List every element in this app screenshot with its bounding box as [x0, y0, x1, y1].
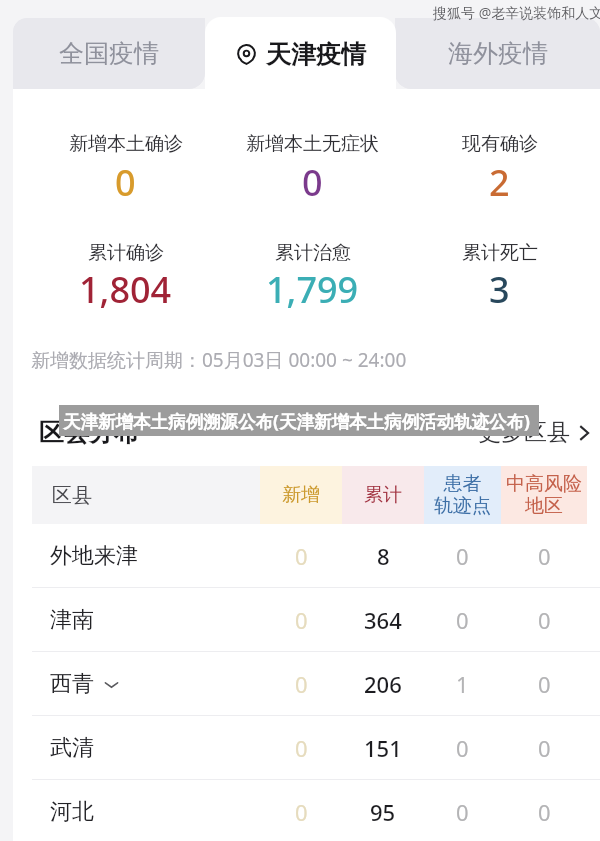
staticText: 0	[302, 158, 323, 207]
staticText: 海外疫情	[448, 38, 548, 69]
staticText: 206	[364, 669, 402, 699]
staticText: 8	[377, 541, 390, 571]
staticText: 0	[456, 797, 469, 827]
staticText: 中高风险 地区	[506, 472, 582, 518]
button[interactable]: 津南	[32, 588, 587, 651]
staticText: 0	[115, 158, 136, 207]
staticText: 患者 轨迹点	[434, 472, 491, 518]
staticText: 0	[538, 605, 551, 635]
staticText: 0	[456, 733, 469, 763]
staticText: 更多区县	[478, 418, 570, 447]
staticText: 0	[456, 541, 469, 571]
staticText: 0	[538, 541, 551, 571]
staticText: 0	[295, 733, 308, 763]
staticText: 累计确诊	[88, 241, 164, 265]
staticText: 河北	[50, 798, 94, 826]
staticText: 364	[364, 605, 402, 635]
staticText: 0	[538, 733, 551, 763]
other: More districts	[580, 426, 589, 440]
staticText: 新增	[282, 483, 320, 507]
staticText: 0	[295, 669, 308, 699]
staticText: 0	[295, 797, 308, 827]
button[interactable]: 海外疫情	[395, 18, 600, 89]
staticText: 1,804	[79, 265, 172, 314]
staticText: 全国疫情	[59, 38, 159, 69]
button[interactable]: 河北	[32, 780, 587, 841]
staticText: 0	[295, 541, 308, 571]
staticText: 新增数据统计周期：05月03日 00:00 ~ 24:00	[31, 347, 407, 373]
button[interactable]: 武清	[32, 716, 587, 779]
staticText: 外地来津	[50, 542, 138, 570]
button[interactable]: 全国疫情	[13, 18, 205, 89]
staticText: 天津疫情	[266, 39, 366, 70]
staticText: 0	[295, 605, 308, 635]
staticText: 0	[538, 797, 551, 827]
staticText: 区县分布	[39, 417, 139, 448]
staticText: 累计治愈	[275, 241, 351, 265]
button[interactable]: 外地来津	[32, 524, 587, 587]
other: Location	[236, 44, 257, 65]
staticText: 区县	[52, 483, 92, 508]
staticText: 1,799	[266, 265, 359, 314]
staticText: 武清	[50, 734, 94, 762]
staticText: 0	[456, 605, 469, 635]
staticText: 95	[370, 797, 396, 827]
staticText: 西青	[50, 670, 94, 698]
staticText: 0	[538, 669, 551, 699]
button[interactable]: Location	[205, 17, 396, 91]
button[interactable]: 西青	[32, 652, 587, 715]
staticText: 累计	[364, 483, 402, 507]
staticText: 累计死亡	[462, 241, 538, 265]
staticText: 新增本土确诊	[69, 132, 183, 156]
button[interactable]: 更多区县	[478, 418, 589, 447]
staticText: 搜狐号 @老辛说装饰和人文	[433, 3, 600, 22]
staticText: 现有确诊	[462, 132, 538, 156]
staticText: 新增本土无症状	[246, 132, 379, 156]
staticText: 3	[489, 265, 510, 314]
staticText: 2	[489, 158, 510, 207]
staticText: 1	[456, 669, 469, 699]
staticText: 151	[364, 733, 402, 763]
staticText: 津南	[50, 606, 94, 634]
staticText: 天津新增本土病例溯源公布(天津新增本土病例活动轨迹公布)	[63, 409, 530, 433]
button[interactable]: 区县分布	[39, 417, 139, 448]
